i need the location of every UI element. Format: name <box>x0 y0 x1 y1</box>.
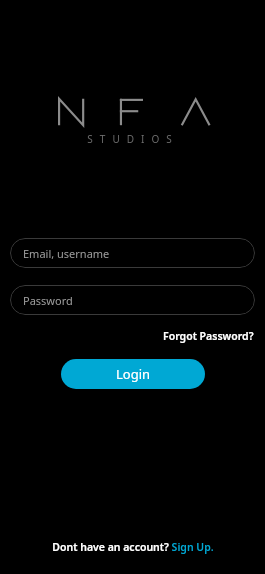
staticText: Forgot Password? <box>163 329 254 343</box>
staticText: Login <box>116 365 151 383</box>
button[interactable]: Dont have an account? Sign Up. <box>50 538 216 556</box>
staticText: Password <box>23 293 73 308</box>
staticText: Dont have an account? Sign Up. <box>52 540 214 554</box>
staticText: STUDIOS <box>87 132 179 146</box>
button[interactable]: Email, username <box>10 238 255 268</box>
button[interactable]: Forgot Password? <box>162 328 255 344</box>
button[interactable]: Password <box>10 285 255 315</box>
button[interactable]: Login <box>61 359 205 389</box>
staticText: Email, username <box>23 246 110 261</box>
